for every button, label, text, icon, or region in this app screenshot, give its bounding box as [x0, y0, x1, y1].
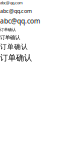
staticText: abc@qq.com [0, 16, 40, 25]
staticText: 订单确认 [0, 43, 28, 51]
staticText: abc@qq.com [0, 0, 23, 5]
staticText: abc@qq.com [0, 7, 32, 14]
staticText: 订单确认 [0, 34, 20, 41]
staticText: 订单确认 [0, 27, 16, 32]
staticText: 订单确认 [0, 53, 32, 63]
